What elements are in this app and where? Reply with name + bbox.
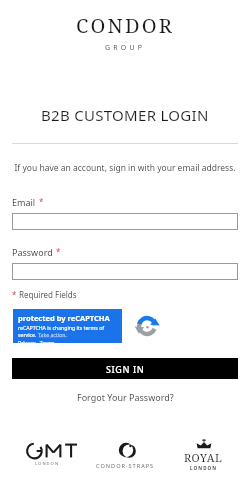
staticText: CONDOR [76,12,175,39]
staticText: service. [18,331,38,338]
staticText: * [12,289,17,300]
staticText: Privacy - Terms [18,339,55,343]
button[interactable]: SIGN IN [12,358,238,379]
button[interactable]: reCAPTCHA protection info [13,309,172,343]
staticText: LONDON [190,465,218,471]
staticText: SIGN IN [106,363,145,375]
button[interactable] [12,263,238,280]
staticText: * [56,246,61,257]
staticText: CONDOR·STRAPS [96,462,155,470]
staticText: LONDON [35,461,60,467]
staticText: If you have an account, sign in with you… [14,162,236,174]
staticText: Email [12,196,36,208]
button[interactable]: Forgot Your Password? [71,389,180,405]
staticText: protected by reCAPTCHA [18,313,110,323]
staticText: Password [12,246,53,258]
staticText: * [39,196,44,207]
staticText: Required Fields [19,289,77,300]
staticText: reCAPTCHA is changing its terms of [18,324,105,331]
staticText: Take action. [38,331,67,338]
staticText: Forgot Your Password? [77,391,174,403]
staticText: GROUP [105,43,146,53]
staticText: ROYAL [184,450,223,465]
button[interactable] [12,213,238,230]
staticText: B2B CUSTOMER LOGIN [41,105,209,125]
